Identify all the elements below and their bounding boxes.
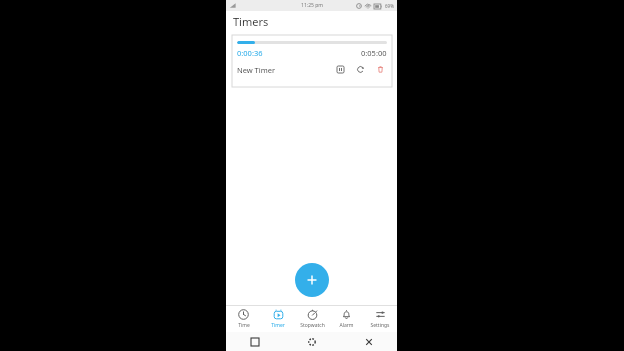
- button[interactable]: Time: [226, 306, 261, 332]
- staticText: Alarm: [339, 322, 354, 329]
- button[interactable]: 0:00:36: [232, 35, 392, 87]
- button[interactable]: Home: [283, 332, 340, 351]
- staticText: Timers: [233, 14, 269, 29]
- staticText: Settings: [370, 322, 390, 329]
- staticText: Time: [238, 322, 250, 329]
- button[interactable]: Delete timer: [374, 63, 387, 76]
- button[interactable]: Back: [340, 332, 397, 351]
- button[interactable]: Stopwatch: [295, 306, 329, 332]
- button[interactable]: Settings: [363, 306, 397, 332]
- button[interactable]: Recents: [226, 332, 283, 351]
- staticText: New Timer: [237, 65, 276, 75]
- staticText: 0:00:36: [237, 48, 263, 58]
- staticText: Stopwatch: [300, 322, 325, 329]
- button[interactable]: Add timer: [295, 263, 329, 297]
- button[interactable]: Pause timer: [334, 63, 347, 76]
- button[interactable]: Reset timer: [354, 63, 367, 76]
- button[interactable]: Alarm: [329, 306, 363, 332]
- button[interactable]: Timer: [261, 306, 295, 332]
- staticText: 11:25 pm: [301, 2, 323, 9]
- staticText: 0:05:00: [361, 48, 387, 58]
- staticText: Timer: [271, 322, 285, 329]
- staticText: 69%: [385, 3, 394, 9]
